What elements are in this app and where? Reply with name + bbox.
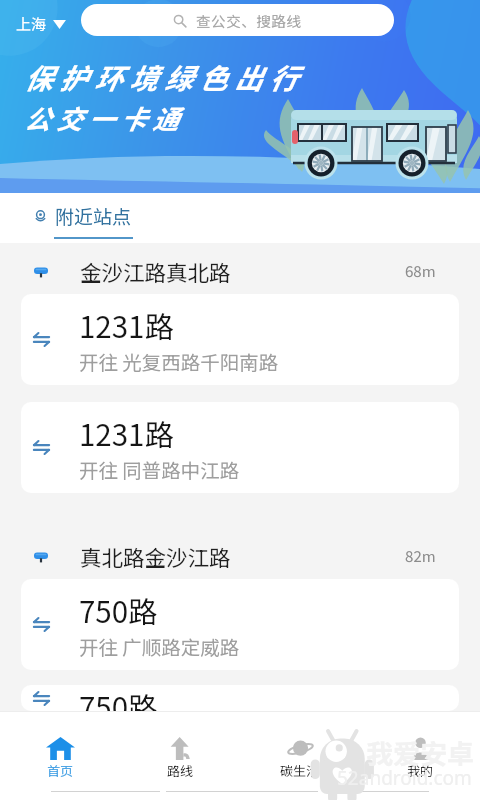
- button[interactable]: Routes: [120, 734, 240, 783]
- button[interactable]: 上海: [12, 9, 70, 39]
- button[interactable]: Carbon life: [240, 734, 360, 783]
- staticText: 首页: [47, 761, 74, 780]
- staticText: 开往 广顺路定威路: [79, 632, 240, 660]
- staticText: 750路: [79, 589, 158, 632]
- staticText: 52android.com: [337, 765, 472, 791]
- button[interactable]: 750路: [21, 685, 459, 711]
- button[interactable]: 1231路: [21, 402, 459, 493]
- staticText: 真北路金沙江路: [80, 541, 231, 572]
- staticText: 上海: [16, 13, 47, 35]
- staticText: 碳生活: [280, 761, 320, 780]
- staticText: 金沙江路真北路: [80, 256, 231, 287]
- staticText: 公交一卡通: [24, 99, 185, 137]
- staticText: 保护环境绿色出行: [24, 57, 305, 98]
- staticText: 路线: [167, 761, 194, 780]
- staticText: 查公交、搜路线: [196, 10, 302, 31]
- button[interactable]: Home: [0, 734, 120, 783]
- staticText: 82m: [405, 545, 436, 567]
- staticText: 附近站点: [55, 202, 132, 230]
- button[interactable]: 查公交、搜路线: [81, 4, 394, 36]
- button[interactable]: 附近站点: [34, 202, 133, 239]
- button[interactable]: 750路: [21, 579, 459, 670]
- staticText: 我的: [407, 761, 434, 780]
- staticText: 开往 同普路中江路: [79, 455, 240, 483]
- staticText: 1231路: [79, 412, 174, 455]
- button[interactable]: 真北路金沙江路: [0, 533, 480, 579]
- button[interactable]: 1231路: [21, 294, 459, 385]
- staticText: 开往 光复西路千阳南路: [79, 347, 279, 375]
- staticText: 68m: [405, 260, 436, 282]
- staticText: 750路: [79, 685, 158, 711]
- staticText: 我爱安卓: [366, 733, 474, 772]
- staticText: 1231路: [79, 304, 174, 347]
- button[interactable]: 金沙江路真北路: [0, 248, 480, 294]
- button[interactable]: Profile: [360, 734, 480, 783]
